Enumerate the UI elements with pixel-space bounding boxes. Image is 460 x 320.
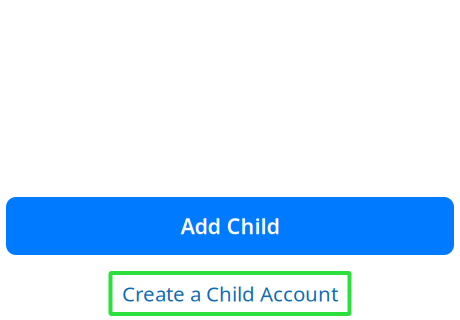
button[interactable]: Add Child bbox=[6, 197, 454, 255]
staticText: Create a Child Account bbox=[122, 280, 338, 307]
button[interactable]: Create a Child Account bbox=[108, 271, 351, 316]
staticText: Add Child bbox=[180, 211, 279, 241]
